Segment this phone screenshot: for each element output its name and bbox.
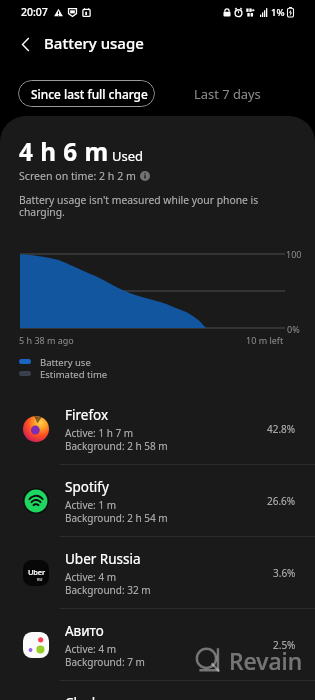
staticText: Uber xyxy=(28,567,45,577)
staticText: Last 7 days xyxy=(194,85,261,103)
button[interactable]: Back xyxy=(7,26,43,62)
staticText: Spotify xyxy=(65,478,109,496)
staticText: 4 h 6 m xyxy=(19,135,109,168)
staticText: 26.6% xyxy=(267,494,296,508)
staticText: Since last full charge xyxy=(31,86,148,102)
staticText: 0% xyxy=(287,323,300,335)
staticText: Active: 4 m xyxy=(65,642,117,656)
button[interactable]: Uber xyxy=(0,537,315,608)
staticText: Background: 2 h 54 m xyxy=(65,511,168,525)
staticText: 20:07 xyxy=(21,5,48,19)
staticText: Firefox xyxy=(65,406,109,424)
staticText: Battery use xyxy=(40,356,91,369)
staticText: 5 h 38 m ago xyxy=(19,334,74,346)
staticText: Background: 7 m xyxy=(65,655,145,669)
staticText: Estimated time xyxy=(40,368,108,381)
staticText: Авито xyxy=(65,622,104,640)
staticText: Uber Russia xyxy=(65,550,141,568)
button[interactable]: Авито xyxy=(0,609,315,680)
staticText: 42.8% xyxy=(267,422,296,436)
button[interactable]: Spotify xyxy=(0,465,315,536)
staticText: 10 m left xyxy=(246,334,284,346)
staticText: Revain xyxy=(229,645,303,676)
button[interactable]: Since last full charge xyxy=(18,80,155,107)
button[interactable]: Clock xyxy=(0,681,315,700)
staticText: Active: 1 m xyxy=(65,498,117,512)
staticText: 3.6% xyxy=(273,566,296,580)
staticText: Used xyxy=(112,147,144,165)
staticText: Battery usage xyxy=(44,33,144,53)
button[interactable]: Firefox xyxy=(0,393,315,464)
staticText: Clock xyxy=(65,694,99,700)
staticText: Background: 2 h 58 m xyxy=(65,439,168,453)
button[interactable]: Info xyxy=(140,171,150,181)
staticText: 1% xyxy=(271,6,285,19)
staticText: Battery usage isn't measured while your … xyxy=(19,193,259,219)
staticText: Screen on time: 2 h 2 m xyxy=(19,169,136,183)
staticText: 100 xyxy=(286,248,302,260)
staticText: Background: 32 m xyxy=(65,583,151,597)
button[interactable]: Last 7 days xyxy=(179,80,276,107)
staticText: Active: 4 m xyxy=(65,570,117,584)
staticText: RU xyxy=(37,577,43,582)
staticText: Active: 1 h 7 m xyxy=(65,426,134,440)
staticText: 2.5% xyxy=(273,638,296,652)
